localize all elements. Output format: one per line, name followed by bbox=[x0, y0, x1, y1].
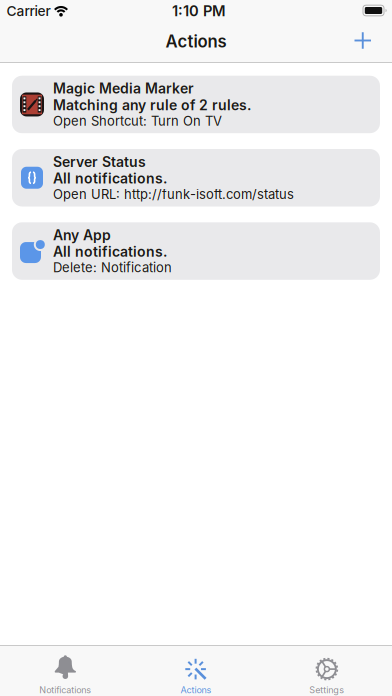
staticText: Carrier bbox=[6, 3, 50, 19]
staticText: 1:10 PM bbox=[172, 2, 226, 20]
staticText: Matching any rule of 2 rules. bbox=[53, 97, 251, 113]
staticText: Notifications bbox=[39, 684, 91, 695]
staticText: Server Status bbox=[53, 154, 146, 170]
staticText: Actions bbox=[180, 684, 211, 695]
staticText: All notifications. bbox=[53, 243, 167, 260]
staticText: Delete: Notification bbox=[53, 260, 172, 275]
staticText: Actions bbox=[165, 32, 226, 51]
staticText: Open URL: http://funk-isoft.com/status bbox=[53, 187, 294, 202]
staticText: All notifications. bbox=[53, 170, 167, 187]
staticText: Settings bbox=[309, 684, 344, 695]
staticText: Open Shortcut: Turn On TV bbox=[53, 113, 222, 129]
staticText: Any App bbox=[53, 227, 111, 243]
staticText: Magic Media Marker bbox=[53, 80, 194, 97]
